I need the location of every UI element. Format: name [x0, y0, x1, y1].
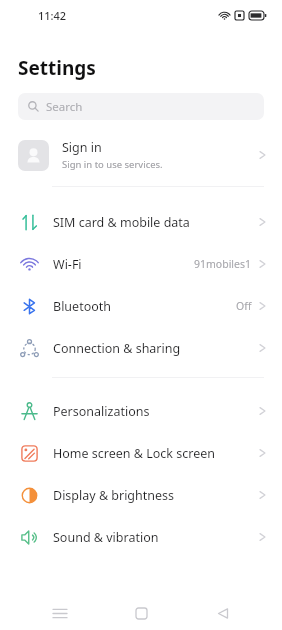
staticText: Off [236, 299, 252, 313]
button[interactable]: Recent apps [38, 596, 82, 630]
staticText: Sign in to use services. [62, 158, 163, 171]
staticText: Settings [18, 55, 96, 81]
button[interactable]: Back [201, 596, 245, 630]
button[interactable]: Wi-Fi [0, 243, 282, 285]
button[interactable]: Sign in [0, 131, 282, 179]
staticText: 11:42 [38, 8, 67, 23]
staticText: Sign in [62, 139, 102, 156]
button[interactable]: Bluetooth [0, 285, 282, 327]
staticText: Search [46, 99, 83, 115]
button[interactable]: Search [18, 93, 264, 120]
button[interactable]: Display & brightness [0, 474, 282, 516]
button[interactable]: Sound & vibration [0, 516, 282, 558]
button[interactable]: Connection & sharing [0, 327, 282, 369]
button[interactable]: Home [119, 596, 163, 630]
staticText: Bluetooth [53, 298, 112, 315]
button[interactable]: SIM card & mobile data [0, 201, 282, 243]
staticText: Home screen & Lock screen [53, 445, 215, 462]
staticText: Wi-Fi [53, 256, 82, 273]
button[interactable]: Home screen & Lock screen [0, 432, 282, 474]
button[interactable]: Personalizations [0, 390, 282, 432]
staticText: Sound & vibration [53, 529, 159, 546]
staticText: Display & brightness [53, 487, 175, 504]
staticText: Connection & sharing [53, 340, 181, 357]
staticText: SIM card & mobile data [53, 214, 190, 231]
staticText: Personalizations [53, 403, 150, 420]
staticText: 91mobiles1 [194, 257, 252, 271]
